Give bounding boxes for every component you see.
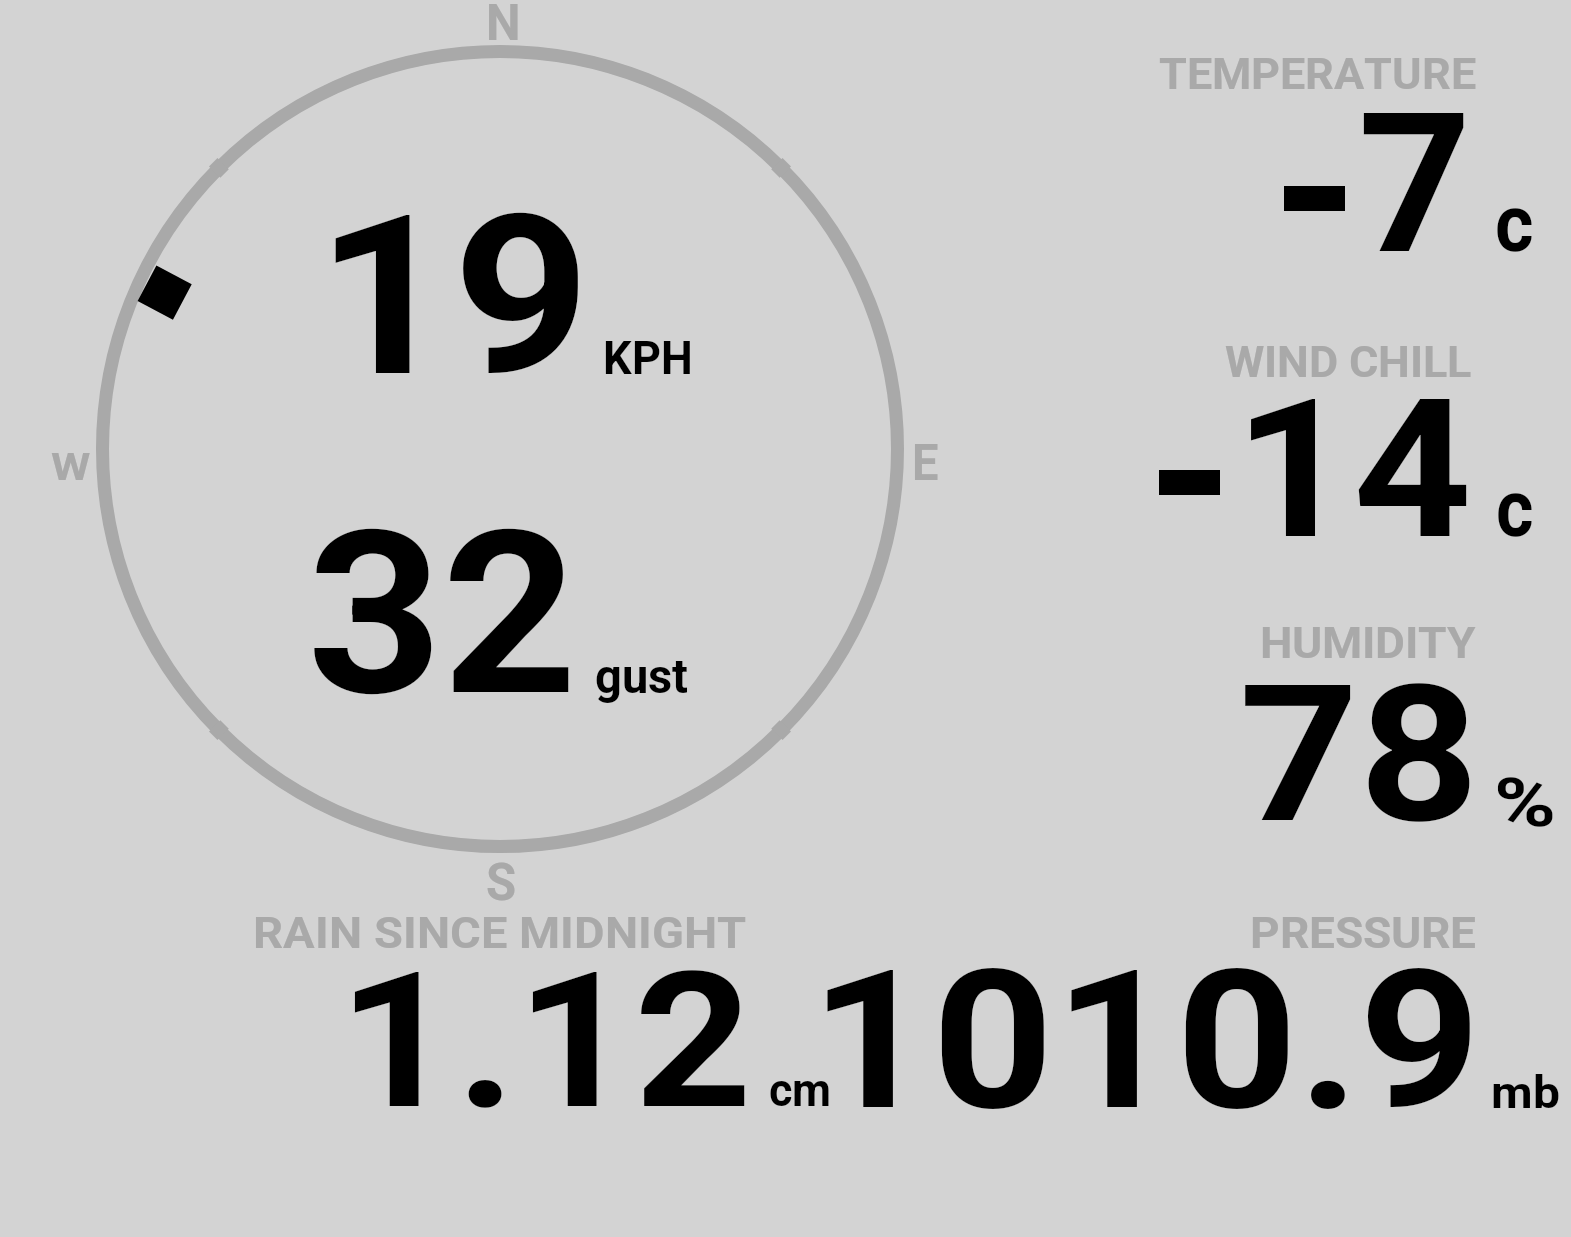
- button[interactable]: Rain since midnight 1.12 cm: [250, 900, 850, 1125]
- button[interactable]: Humidity 78 percent: [1100, 610, 1560, 835]
- button[interactable]: Wind chill -14 C: [1100, 330, 1560, 550]
- button[interactable]: Pressure 1010.9 mb: [855, 900, 1570, 1125]
- button[interactable]: Wind 19 KPH, gusting 32, compass dial: [85, 35, 915, 865]
- button[interactable]: Temperature -7 C: [1100, 40, 1560, 260]
